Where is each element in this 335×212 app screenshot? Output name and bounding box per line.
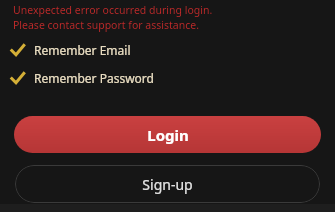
staticText: Please contact support for assistance. xyxy=(13,18,199,32)
staticText: Remember Password xyxy=(34,70,154,86)
other: Remember Password xyxy=(8,69,26,87)
button[interactable]: Remember Password xyxy=(8,69,327,87)
staticText: Sign-up xyxy=(142,175,193,194)
button[interactable]: Sign-up xyxy=(15,165,320,203)
staticText: Unexpected error occurred during login. xyxy=(13,3,213,17)
other: Remember Email xyxy=(8,41,26,59)
button[interactable]: Remember Email xyxy=(8,41,327,59)
staticText: Remember Email xyxy=(34,42,131,58)
staticText: Login xyxy=(147,125,189,145)
button[interactable]: Login xyxy=(14,116,321,153)
